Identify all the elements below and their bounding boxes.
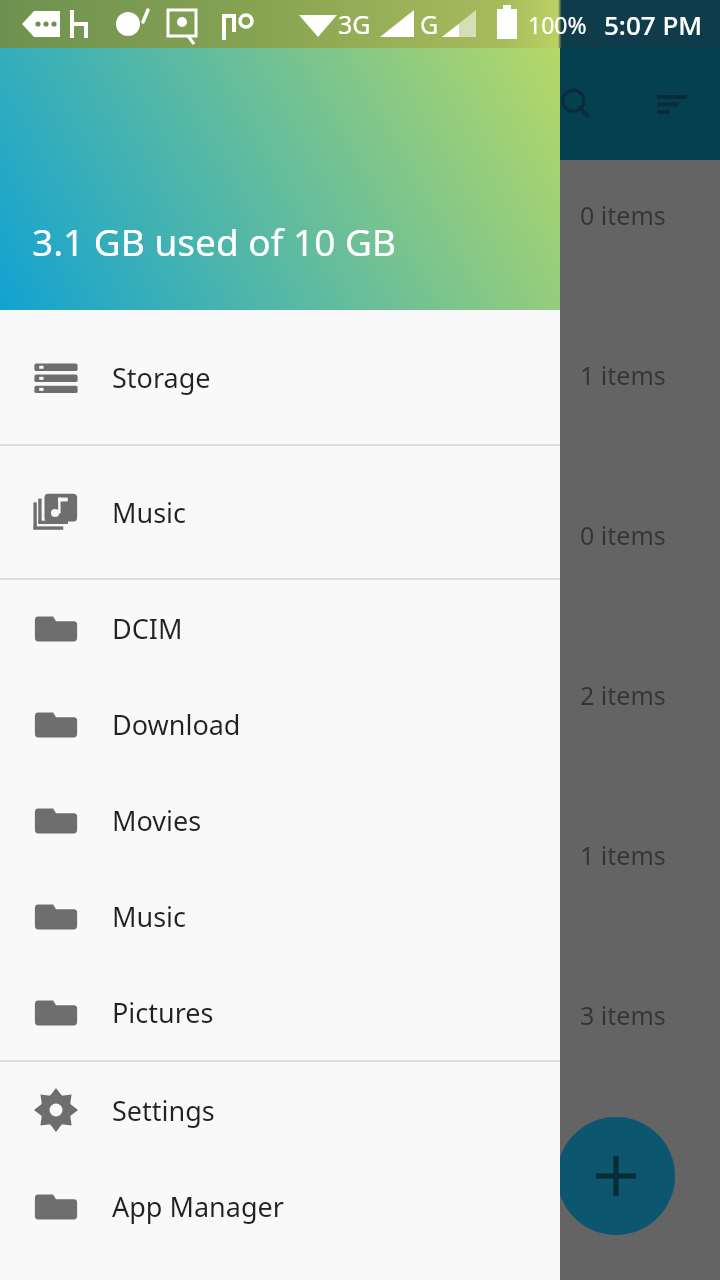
button[interactable]: DCIM [0, 580, 560, 676]
staticText: Pictures [112, 994, 214, 1031]
button[interactable]: 1 items [0, 832, 720, 992]
staticText: G [420, 7, 439, 41]
button[interactable]: Storage [0, 310, 560, 444]
staticText: Music [112, 494, 187, 531]
button[interactable]: Pictures [0, 964, 560, 1060]
button[interactable]: 2 items [0, 672, 720, 832]
button[interactable]: Music [0, 868, 560, 964]
staticText: 1 items [580, 838, 666, 872]
button[interactable]: Movies [0, 772, 560, 868]
staticText: 5:07 PM [604, 7, 703, 42]
staticText: 0 items [580, 518, 666, 552]
staticText: 3G [338, 7, 371, 41]
button[interactable]: 0 items [0, 512, 720, 672]
staticText: 0 items [580, 198, 666, 232]
staticText: Movies [112, 802, 202, 839]
button[interactable]: App Manager [0, 1158, 560, 1254]
staticText: App Manager [112, 1188, 284, 1225]
button[interactable]: Download [0, 676, 560, 772]
staticText: 100% [528, 9, 587, 40]
button[interactable]: 0 items [0, 192, 720, 352]
staticText: 1 items [580, 358, 666, 392]
button[interactable]: 1 items [0, 352, 720, 512]
staticText: Settings [112, 1092, 215, 1129]
staticText: Storage [112, 359, 211, 396]
button[interactable]: Add [557, 1117, 675, 1235]
button[interactable]: Sort [644, 76, 700, 132]
button[interactable]: Search [548, 76, 604, 132]
staticText: 2 items [580, 678, 666, 712]
button[interactable]: 3 items [0, 992, 720, 1152]
staticText: 3.1 GB used of 10 GB [32, 216, 396, 266]
staticText: 3 items [580, 998, 666, 1032]
staticText: Download [112, 706, 241, 743]
staticText: DCIM [112, 610, 183, 647]
button[interactable]: Music [0, 446, 560, 578]
staticText: Music [112, 898, 187, 935]
button[interactable]: Settings [0, 1062, 560, 1158]
